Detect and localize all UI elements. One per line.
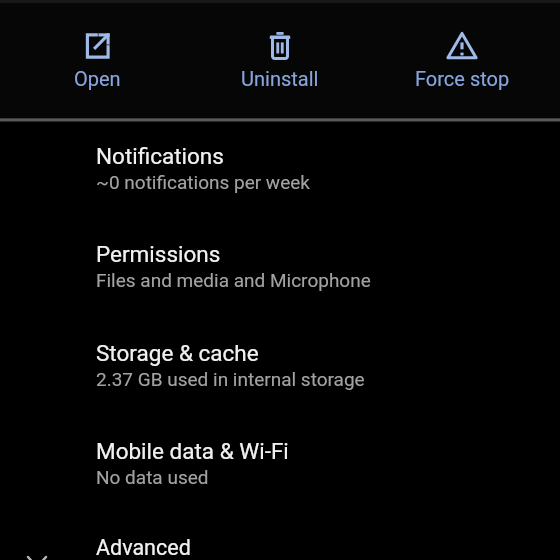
- staticText: Advanced: [96, 535, 191, 560]
- button[interactable]: Advanced: [0, 523, 560, 560]
- button[interactable]: Notifications: [0, 131, 560, 227]
- staticText: Storage & cache: [96, 340, 259, 366]
- staticText: Files and media and Microphone: [96, 269, 371, 291]
- button[interactable]: Uninstall: [210, 0, 350, 112]
- staticText: 2.37 GB used in internal storage: [96, 368, 365, 390]
- button[interactable]: Storage & cache: [0, 328, 560, 424]
- staticText: Uninstall: [241, 67, 319, 90]
- button[interactable]: Force stop: [392, 0, 532, 112]
- staticText: ~0 notifications per week: [96, 171, 310, 193]
- staticText: Force stop: [415, 67, 510, 90]
- staticText: Notifications: [96, 143, 224, 169]
- staticText: Permissions: [96, 241, 221, 267]
- button[interactable]: Open: [27, 0, 167, 112]
- staticText: Open: [74, 67, 121, 90]
- button[interactable]: Mobile data & Wi-Fi: [0, 426, 560, 522]
- staticText: No data used: [96, 466, 209, 488]
- button[interactable]: Permissions: [0, 229, 560, 325]
- staticText: Mobile data & Wi-Fi: [96, 438, 289, 464]
